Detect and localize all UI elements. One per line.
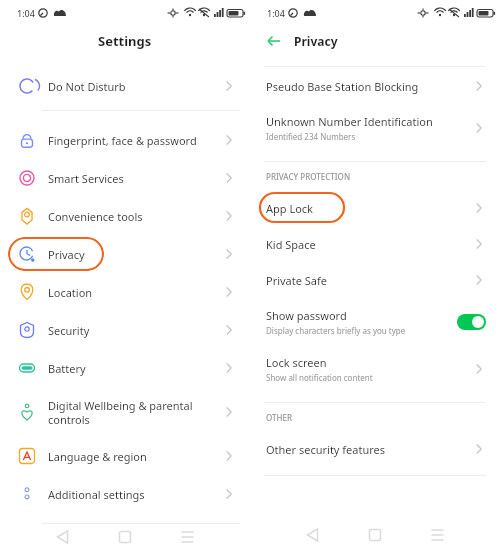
staticText: OTHER (266, 412, 293, 423)
button[interactable]: Lock screen (250, 346, 500, 392)
staticText: Convenience tools (48, 209, 222, 224)
staticText: Digital Wellbeing & parental controls (48, 398, 222, 427)
staticText: App Lock (266, 201, 313, 216)
staticText: Do Not Disturb (48, 79, 222, 94)
staticText: Security (48, 323, 222, 338)
staticText: Battery (48, 361, 222, 376)
staticText: Lock screen (266, 355, 327, 370)
staticText: Private Safe (266, 273, 328, 288)
staticText: PRIVACY PROTECTION (266, 171, 351, 182)
staticText: Settings (98, 32, 152, 50)
button[interactable]: Additional settings (0, 475, 250, 513)
button[interactable]: Do Not Disturb (0, 64, 250, 108)
staticText: Fingerprint, face & password (48, 133, 222, 148)
staticText: Language & region (48, 449, 222, 464)
staticText: Additional settings (48, 487, 222, 502)
staticText: Pseudo Base Station Blocking (266, 79, 419, 94)
button[interactable]: Convenience tools (0, 197, 250, 235)
button[interactable]: Show password (250, 298, 500, 346)
staticText: 1:04 (267, 7, 285, 19)
button[interactable]: Language & region (0, 437, 250, 475)
button[interactable]: Digital Wellbeing & parental controls (0, 387, 250, 437)
button[interactable]: App Lock (250, 190, 500, 226)
staticText: Unknown Number Identification (266, 114, 433, 129)
button[interactable]: Privacy (0, 235, 250, 273)
button[interactable]: Pseudo Base Station Blocking (250, 67, 500, 105)
staticText: Privacy (48, 247, 222, 262)
button[interactable]: Other security features (250, 431, 500, 467)
button[interactable]: Back (264, 31, 284, 51)
button[interactable]: Private Safe (250, 262, 500, 298)
button[interactable]: Location (0, 273, 250, 311)
staticText: Location (48, 285, 222, 300)
staticText: Identified 234 Numbers (266, 131, 356, 142)
button[interactable]: Unknown Number Identification (250, 105, 500, 151)
staticText: Smart Services (48, 171, 222, 186)
staticText: Kid Space (266, 237, 316, 252)
staticText: Privacy (294, 33, 338, 49)
button[interactable]: Smart Services (0, 159, 250, 197)
staticText: 1:04 (17, 7, 35, 19)
other: Show password toggle (457, 314, 486, 330)
staticText: Show password (266, 308, 347, 323)
button[interactable]: Fingerprint, face & password (0, 121, 250, 159)
staticText: Show all notification content (266, 372, 373, 383)
button[interactable]: Kid Space (250, 226, 500, 262)
staticText: Display characters briefly as you type (266, 325, 406, 336)
button[interactable]: Battery (0, 349, 250, 387)
button[interactable]: Security (0, 311, 250, 349)
staticText: Other security features (266, 442, 386, 457)
